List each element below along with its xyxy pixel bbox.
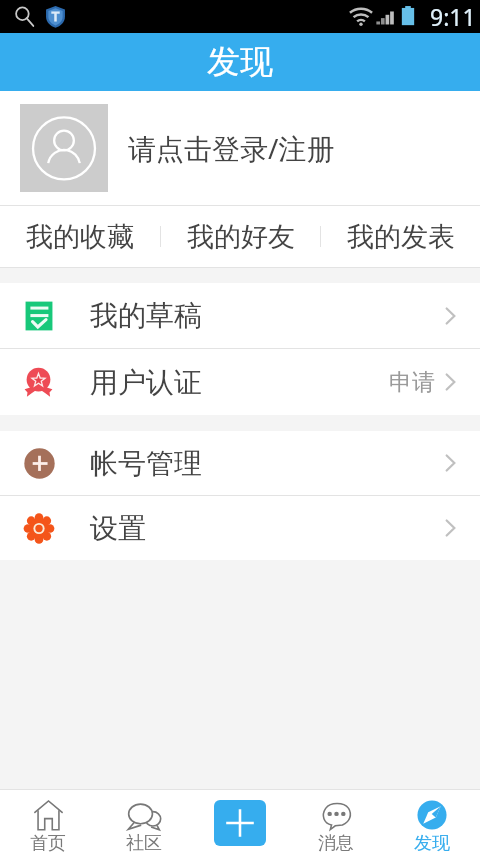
- staticText: 申请: [389, 368, 435, 397]
- staticText: 首页: [30, 832, 66, 855]
- staticText: 发现: [414, 832, 450, 855]
- staticText: 消息: [318, 832, 354, 855]
- staticText: 社区: [126, 832, 162, 855]
- staticText: 帐号管理: [90, 446, 202, 481]
- button[interactable]: 发现: [384, 790, 480, 855]
- button[interactable]: 社区: [96, 790, 192, 855]
- staticText: 9:11: [430, 1, 476, 32]
- staticText: 请点击登录/注册: [128, 129, 335, 167]
- staticText: 我的草稿: [90, 298, 202, 333]
- button[interactable]: 消息: [288, 790, 384, 855]
- button[interactable]: 我的好友: [161, 206, 320, 267]
- staticText: 设置: [90, 511, 146, 546]
- staticText: 用户认证: [90, 365, 202, 400]
- button[interactable]: 请点击登录/注册: [0, 91, 480, 205]
- staticText: 我的收藏: [26, 220, 134, 254]
- staticText: 我的发表: [347, 220, 455, 254]
- button[interactable]: Add post: [214, 800, 266, 846]
- button[interactable]: 用户认证: [0, 349, 480, 415]
- staticText: 发现: [207, 41, 273, 83]
- button[interactable]: 我的发表: [321, 206, 480, 267]
- button[interactable]: 我的收藏: [0, 206, 160, 267]
- button[interactable]: 首页: [0, 790, 96, 855]
- staticText: 我的好友: [187, 220, 295, 254]
- button[interactable]: 设置: [0, 496, 480, 560]
- button[interactable]: 帐号管理: [0, 431, 480, 495]
- button[interactable]: 我的草稿: [0, 283, 480, 348]
